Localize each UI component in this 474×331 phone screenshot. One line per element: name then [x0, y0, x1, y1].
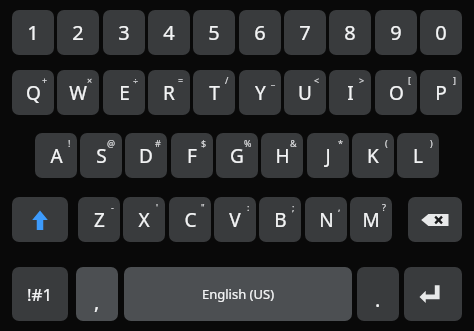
- button[interactable]: 4: [148, 10, 190, 55]
- staticText: I: [347, 80, 354, 106]
- button[interactable]: B: [259, 197, 301, 242]
- button[interactable]: I: [329, 70, 371, 115]
- staticText: C: [184, 207, 197, 233]
- staticText: ,: [338, 201, 341, 213]
- staticText: M: [362, 207, 380, 233]
- staticText: ": [201, 201, 205, 213]
- button[interactable]: X: [123, 197, 165, 242]
- staticText: O: [389, 80, 404, 106]
- staticText: T: [209, 80, 220, 106]
- button[interactable]: 3: [103, 10, 145, 55]
- button[interactable]: Z: [78, 197, 120, 242]
- staticText: [: [408, 74, 411, 86]
- staticText: B: [274, 207, 287, 233]
- button[interactable]: 1: [12, 10, 54, 55]
- button[interactable]: D: [125, 133, 167, 178]
- staticText: ?: [382, 201, 386, 213]
- button[interactable]: S: [80, 133, 122, 178]
- staticText: :: [247, 201, 250, 213]
- button[interactable]: W: [57, 70, 99, 115]
- staticText: -: [111, 201, 114, 213]
- staticText: W: [69, 80, 87, 106]
- button[interactable]: 6: [239, 10, 281, 55]
- staticText: 7: [299, 19, 311, 46]
- staticText: V: [229, 207, 241, 233]
- staticText: @: [107, 137, 116, 149]
- button[interactable]: F: [171, 133, 213, 178]
- button[interactable]: N: [305, 197, 347, 242]
- staticText: &: [290, 137, 297, 149]
- staticText: /: [225, 74, 229, 86]
- staticText: A: [50, 143, 63, 169]
- staticText: ]: [453, 74, 456, 86]
- staticText: P: [435, 80, 447, 106]
- staticText: D: [139, 143, 153, 169]
- button[interactable]: J: [307, 133, 349, 178]
- button[interactable]: 0: [420, 10, 462, 55]
- staticText: 3: [118, 19, 130, 46]
- staticText: E: [119, 80, 130, 106]
- staticText: !#1: [27, 283, 53, 306]
- staticText: Q: [26, 80, 41, 106]
- button[interactable]: Backspace: [408, 197, 462, 242]
- button[interactable]: Shift: [12, 197, 68, 242]
- button[interactable]: Y: [239, 70, 281, 115]
- button[interactable]: 5: [193, 10, 235, 55]
- staticText: N: [319, 207, 334, 233]
- button[interactable]: Enter: [404, 267, 462, 321]
- button[interactable]: Comma: [76, 267, 118, 321]
- button[interactable]: !#1: [12, 267, 68, 321]
- staticText: S: [96, 143, 107, 169]
- button[interactable]: 8: [329, 10, 371, 55]
- staticText: R: [163, 80, 175, 106]
- staticText: >: [359, 74, 365, 86]
- button[interactable]: 7: [284, 10, 326, 55]
- staticText: 5: [208, 19, 220, 46]
- button[interactable]: H: [261, 133, 303, 178]
- button[interactable]: R: [148, 70, 190, 115]
- staticText: ,: [94, 288, 100, 315]
- staticText: F: [187, 143, 197, 169]
- staticText: K: [367, 143, 379, 169]
- button[interactable]: 9: [375, 10, 417, 55]
- staticText: +: [42, 74, 48, 86]
- staticText: L: [413, 143, 423, 169]
- staticText: .: [375, 286, 381, 313]
- button[interactable]: M: [350, 197, 392, 242]
- staticText: (: [385, 137, 388, 149]
- button[interactable]: Period: [357, 267, 399, 321]
- button[interactable]: Q: [12, 70, 54, 115]
- staticText: Z: [94, 207, 105, 233]
- staticText: G: [230, 143, 244, 169]
- button[interactable]: 2: [57, 10, 99, 55]
- staticText: J: [325, 143, 331, 169]
- button[interactable]: L: [397, 133, 439, 178]
- staticText: 9: [390, 19, 402, 46]
- staticText: 8: [344, 19, 356, 46]
- staticText: <: [314, 74, 320, 86]
- button[interactable]: V: [214, 197, 256, 242]
- button[interactable]: K: [352, 133, 394, 178]
- staticText: H: [275, 143, 290, 169]
- staticText: 4: [163, 19, 175, 46]
- button[interactable]: T: [193, 70, 235, 115]
- staticText: ): [430, 137, 433, 149]
- button[interactable]: G: [216, 133, 258, 178]
- staticText: X: [138, 207, 150, 233]
- staticText: $: [201, 137, 207, 149]
- staticText: ÷: [133, 74, 139, 86]
- staticText: !: [68, 137, 71, 149]
- staticText: ': [156, 201, 159, 213]
- staticText: 2: [72, 19, 84, 46]
- button[interactable]: English (US): [124, 267, 352, 321]
- staticText: #: [155, 137, 161, 149]
- button[interactable]: C: [169, 197, 211, 242]
- staticText: 0: [435, 19, 447, 46]
- button[interactable]: O: [375, 70, 417, 115]
- button[interactable]: E: [103, 70, 145, 115]
- staticText: ;: [292, 201, 295, 213]
- staticText: 6: [254, 19, 266, 46]
- button[interactable]: A: [35, 133, 77, 178]
- button[interactable]: U: [284, 70, 326, 115]
- button[interactable]: P: [420, 70, 462, 115]
